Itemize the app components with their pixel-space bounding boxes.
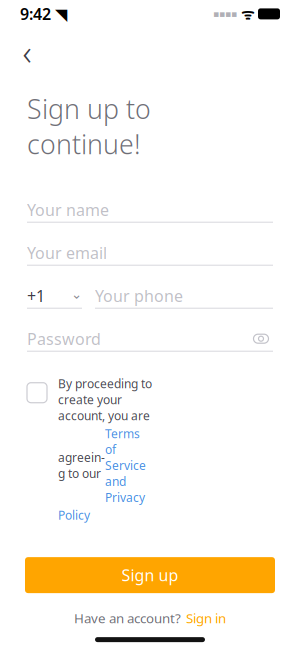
button[interactable]: Show password bbox=[249, 327, 273, 351]
button[interactable]: Sign up bbox=[25, 557, 275, 593]
staticText: Policy bbox=[58, 507, 90, 523]
button[interactable]: By proceeding to create your account, yo… bbox=[58, 376, 160, 523]
staticText: Your email bbox=[27, 242, 107, 263]
staticText: +1 bbox=[27, 285, 45, 306]
staticText: 9:42 ◥ bbox=[20, 3, 67, 24]
button[interactable]: +1 bbox=[27, 284, 82, 309]
staticText: Password bbox=[27, 328, 101, 349]
button[interactable]: Agree to terms bbox=[27, 376, 47, 403]
staticText: By proceeding to create your account, yo… bbox=[58, 376, 152, 423]
button[interactable]: Back bbox=[10, 35, 44, 69]
staticText: Sign up bbox=[121, 564, 178, 586]
staticText: ᯤ bbox=[237, 4, 254, 24]
staticText: Your phone bbox=[95, 285, 183, 306]
staticText: Have an account? bbox=[74, 609, 181, 627]
staticText: Sign up to continue! bbox=[27, 91, 151, 162]
staticText: ▪▪▪▪ bbox=[213, 9, 237, 19]
staticText: ‹ bbox=[22, 29, 31, 75]
staticText: Your name bbox=[27, 199, 109, 220]
staticText: Terms of Service and Privacy bbox=[105, 425, 146, 505]
staticText: Sign in bbox=[186, 609, 226, 627]
staticText: ⌄ bbox=[71, 287, 82, 302]
button[interactable]: Have an account? bbox=[0, 607, 300, 629]
staticText: agreeing to our bbox=[58, 449, 105, 481]
